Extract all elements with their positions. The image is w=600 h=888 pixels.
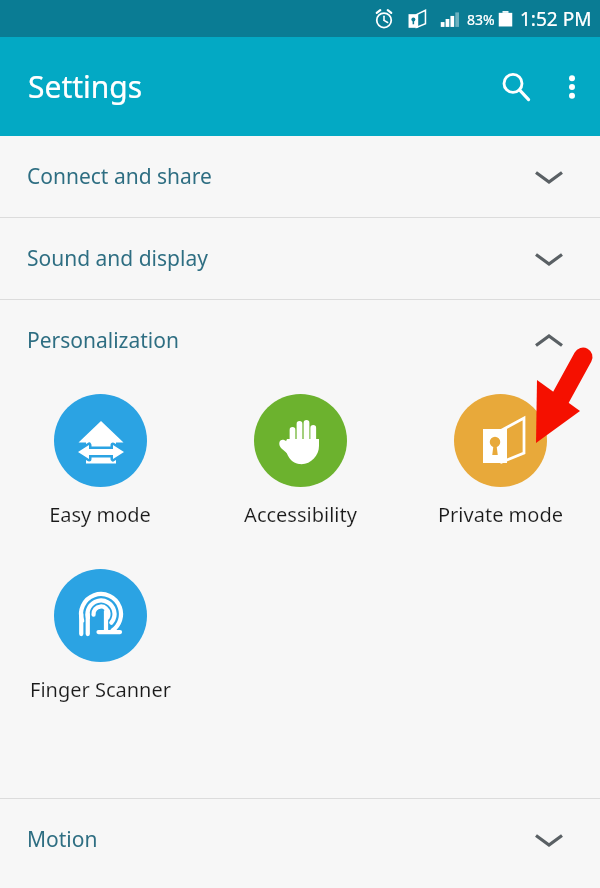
staticText: Finger Scanner <box>30 676 171 703</box>
staticText: Easy mode <box>49 501 151 528</box>
staticText: Connect and share <box>27 162 212 191</box>
button[interactable]: Private mode <box>400 381 600 556</box>
staticText: Settings <box>28 66 143 107</box>
button[interactable]: Search <box>488 59 544 115</box>
staticText: Sound and display <box>27 244 208 273</box>
button[interactable]: Connect and share <box>0 136 600 217</box>
staticText: Personalization <box>27 326 179 355</box>
staticText: 1:52 PM <box>520 6 592 32</box>
button[interactable]: Finger Scanner <box>0 556 200 731</box>
button[interactable]: Personalization <box>0 300 600 381</box>
staticText: 83% <box>467 10 495 29</box>
staticText: Private mode <box>438 501 563 528</box>
staticText: Accessibility <box>244 501 357 528</box>
staticText: Motion <box>27 825 98 854</box>
button[interactable]: Easy mode <box>0 381 200 556</box>
button[interactable]: Accessibility <box>200 381 400 556</box>
button[interactable]: Sound and display <box>0 218 600 299</box>
button[interactable]: Motion <box>0 799 600 880</box>
button[interactable]: More options <box>544 59 600 115</box>
